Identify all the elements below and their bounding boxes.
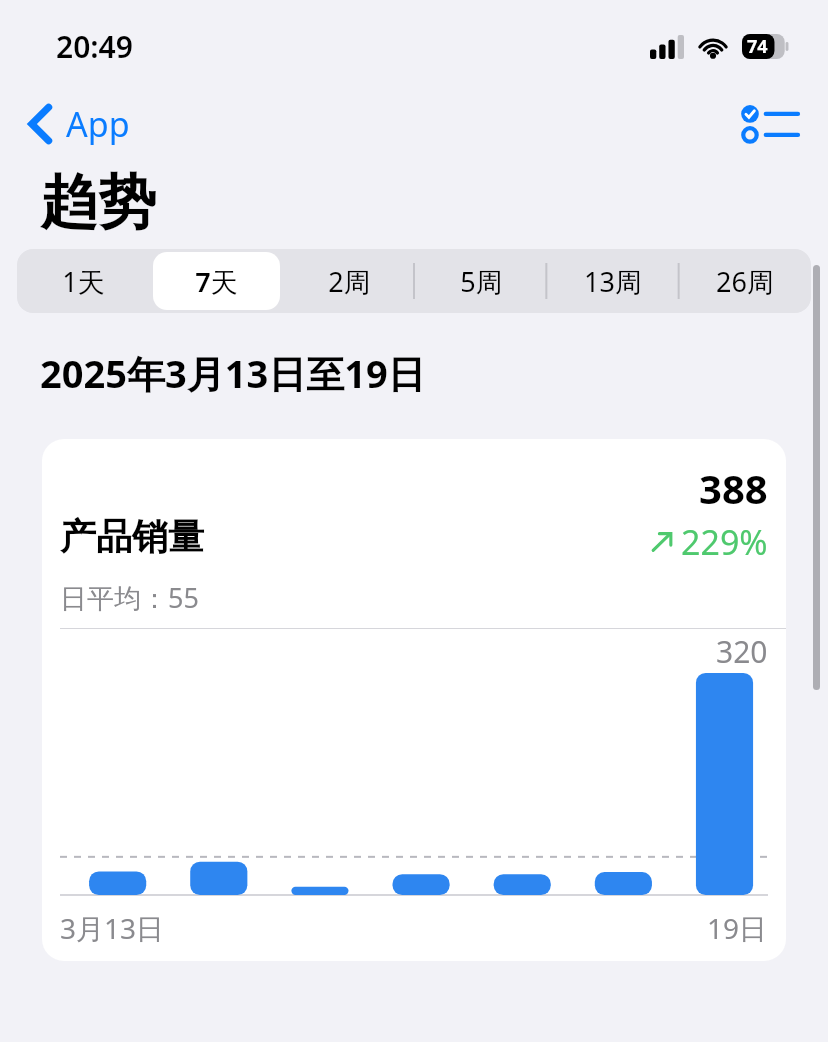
button[interactable]: 产品销量	[42, 439, 786, 961]
button[interactable]: 2周	[286, 252, 412, 310]
staticText: 1天	[62, 263, 105, 300]
staticText: 26周	[716, 263, 774, 300]
staticText: 13周	[584, 263, 642, 300]
staticText: 388	[699, 461, 768, 515]
staticText: 20:49	[56, 26, 133, 67]
button[interactable]: 13周	[550, 252, 676, 310]
staticText: 7天	[195, 263, 238, 300]
staticText: 3月13日	[60, 909, 165, 947]
button[interactable]: List options	[732, 95, 806, 153]
button[interactable]: 1天	[20, 252, 147, 310]
staticText: 19日	[707, 909, 768, 947]
button[interactable]: 7天	[153, 252, 280, 310]
staticText: 74	[747, 34, 768, 59]
staticText: 产品销量	[60, 514, 204, 559]
button[interactable]: 26周	[682, 252, 808, 310]
staticText: 2周	[328, 263, 371, 300]
staticText: 320	[716, 631, 768, 672]
staticText: 日平均：55	[60, 579, 199, 616]
staticText: 229%	[681, 519, 768, 565]
button[interactable]: App	[20, 95, 138, 153]
staticText: 趋势	[40, 166, 156, 239]
button[interactable]: 5周	[418, 252, 544, 310]
staticText: 2025年3月13日至19日	[40, 347, 426, 399]
staticText: App	[66, 101, 130, 147]
staticText: 5周	[460, 263, 503, 300]
